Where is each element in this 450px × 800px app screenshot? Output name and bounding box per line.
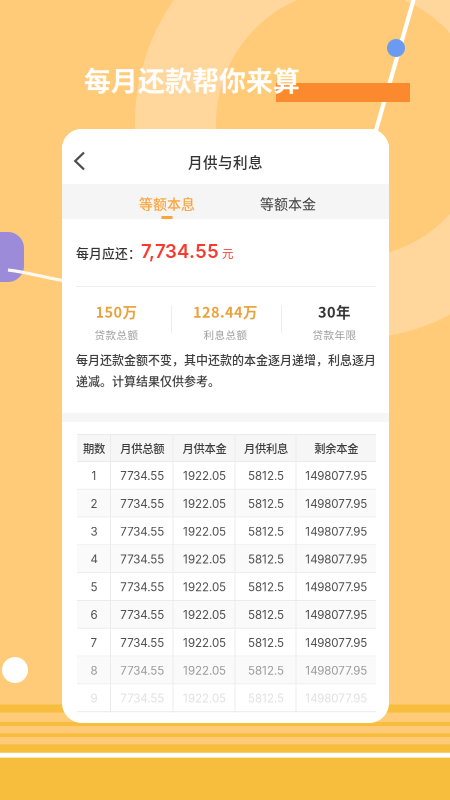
staticText: 1922.05 xyxy=(183,663,226,677)
staticText: 5 xyxy=(90,580,97,594)
staticText: 等额本金 xyxy=(260,193,316,213)
button[interactable]: Back xyxy=(62,143,102,187)
staticText: 1498077.95 xyxy=(305,469,367,483)
staticText: 7,734.55 xyxy=(141,240,219,262)
staticText: 3 xyxy=(90,524,97,538)
staticText: 7734.55 xyxy=(120,636,164,650)
staticText: 6 xyxy=(90,608,97,622)
staticText: 1498077.95 xyxy=(305,663,367,677)
staticText: 5812.5 xyxy=(248,469,284,483)
staticText: 5812.5 xyxy=(248,636,284,650)
staticText: 1498077.95 xyxy=(305,636,367,650)
staticText: 2 xyxy=(90,497,97,511)
staticText: 1498077.95 xyxy=(305,524,367,538)
staticText: 1498077.95 xyxy=(305,608,367,622)
staticText: 7734.55 xyxy=(120,580,164,594)
staticText: 1922.05 xyxy=(183,497,226,511)
staticText: 5812.5 xyxy=(248,524,284,538)
staticText: 5812.5 xyxy=(248,580,284,594)
staticText: 月供利息 xyxy=(244,440,288,456)
staticText: 利息总额 xyxy=(203,327,247,342)
staticText: 5812.5 xyxy=(248,497,284,511)
staticText: 5812.5 xyxy=(248,663,284,677)
staticText: 7734.55 xyxy=(120,524,164,538)
staticText: 贷款年限 xyxy=(312,327,356,342)
staticText: 剩余本金 xyxy=(314,440,358,456)
staticText: 5812.5 xyxy=(248,691,284,705)
staticText: 1922.05 xyxy=(183,580,226,594)
staticText: 5812.5 xyxy=(248,608,284,622)
staticText: 1498077.95 xyxy=(305,497,367,511)
staticText: 7734.55 xyxy=(120,552,164,566)
staticText: 1922.05 xyxy=(183,691,226,705)
button[interactable]: 等额本金 xyxy=(227,184,348,219)
staticText: 1498077.95 xyxy=(305,552,367,566)
staticText: 1922.05 xyxy=(183,524,226,538)
staticText: 7734.55 xyxy=(120,469,164,483)
staticText: 7734.55 xyxy=(120,497,164,511)
staticText: 8 xyxy=(90,663,97,677)
staticText: 7734.55 xyxy=(120,608,164,622)
staticText: 7734.55 xyxy=(120,691,164,705)
staticText: 期数 xyxy=(83,440,105,456)
staticText: 30年 xyxy=(318,301,351,322)
staticText: 月供总额 xyxy=(120,440,164,456)
staticText: 贷款总额 xyxy=(94,327,138,342)
staticText: 1922.05 xyxy=(183,636,226,650)
button[interactable]: 等额本息 xyxy=(106,184,227,219)
staticText: 1922.05 xyxy=(183,552,226,566)
staticText: 月供本金 xyxy=(182,440,226,456)
staticText: 每月还款帮你来算 xyxy=(84,60,300,99)
staticText: 每月还款金额不变，其中还款的本金逐月递增，利息逐月递减。计算结果仅供参考。 xyxy=(76,351,376,390)
staticText: 等额本息 xyxy=(139,193,195,213)
staticText: 4 xyxy=(90,552,97,566)
staticText: 月供与利息 xyxy=(188,151,263,172)
staticText: 元 xyxy=(219,245,234,261)
staticText: 1922.05 xyxy=(183,608,226,622)
staticText: 9 xyxy=(90,691,97,705)
staticText: 1 xyxy=(91,469,96,483)
staticText: 每月应还： xyxy=(76,243,141,262)
staticText: 1922.05 xyxy=(183,469,226,483)
staticText: 7734.55 xyxy=(120,663,164,677)
staticText: 1498077.95 xyxy=(305,691,367,705)
staticText: 1498077.95 xyxy=(305,580,367,594)
staticText: 150万 xyxy=(95,301,137,322)
staticText: 7 xyxy=(90,636,97,650)
staticText: 128.44万 xyxy=(193,301,258,322)
staticText: 5812.5 xyxy=(248,552,284,566)
